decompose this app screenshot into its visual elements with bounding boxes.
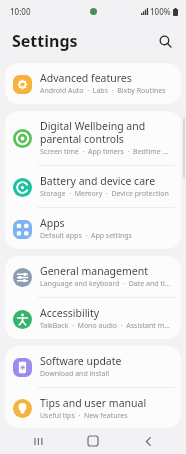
button[interactable]: Back bbox=[131, 428, 165, 454]
staticText: Advanced features bbox=[40, 71, 132, 85]
staticText: 10:00 bbox=[10, 6, 31, 17]
button[interactable]: Software update bbox=[5, 346, 181, 387]
button[interactable]: Battery and device care bbox=[5, 166, 181, 207]
staticText: Tips and user manual bbox=[40, 396, 147, 410]
button[interactable]: Advanced features bbox=[5, 63, 181, 104]
staticText: Digital Wellbeing and parental controls bbox=[40, 119, 173, 146]
button[interactable]: Accessibility bbox=[5, 298, 181, 339]
staticText: Default apps · App settings bbox=[40, 231, 132, 241]
staticText: General management bbox=[40, 264, 148, 278]
staticText: Accessibility bbox=[40, 306, 100, 320]
button[interactable]: Recent apps bbox=[21, 428, 55, 454]
staticText: 100% bbox=[150, 6, 171, 17]
staticText: TalkBack · Mono audio · Assistant menu bbox=[40, 321, 173, 331]
staticText: Language and keyboard · Date and time bbox=[40, 279, 173, 289]
staticText: Storage · Memory · Device protection bbox=[40, 189, 169, 199]
staticText: Screen time · App timers · Bedtime mode bbox=[40, 147, 173, 157]
staticText: Download and install bbox=[40, 369, 110, 379]
button[interactable]: Digital Wellbeing and parental controls bbox=[5, 111, 181, 165]
staticText: Battery and device care bbox=[40, 174, 156, 188]
staticText: Settings bbox=[12, 30, 78, 52]
staticText: Android Auto · Labs · Bixby Routines bbox=[40, 86, 166, 96]
button[interactable]: Search bbox=[152, 28, 178, 54]
staticText: Apps bbox=[40, 216, 65, 230]
button[interactable]: Apps bbox=[5, 208, 181, 249]
staticText: Software update bbox=[40, 354, 122, 368]
staticText: Useful tips · New features bbox=[40, 411, 128, 420]
button[interactable]: General management bbox=[5, 256, 181, 297]
button[interactable]: Home bbox=[76, 428, 110, 454]
button[interactable]: Tips and user manual bbox=[5, 388, 181, 428]
